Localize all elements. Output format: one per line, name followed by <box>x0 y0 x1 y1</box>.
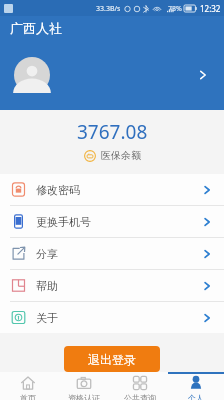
staticText: 广西人社 <box>10 20 62 36</box>
staticText: 个人 <box>188 393 204 400</box>
staticText: 资格认证 <box>68 393 100 400</box>
button[interactable]: 资格认证 <box>56 372 112 400</box>
staticText: 73% <box>168 4 182 14</box>
staticText: 公共查询 <box>124 393 156 400</box>
staticText: 更换手机号 <box>36 215 91 229</box>
button[interactable]: 分享 <box>0 238 224 269</box>
other: View profile <box>196 68 210 82</box>
staticText: 医保余额 <box>101 149 141 162</box>
button[interactable]: 修改密码 <box>0 174 224 205</box>
staticText: 帮助 <box>36 279 58 293</box>
button[interactable]: 帮助 <box>0 270 224 301</box>
staticText: 退出登录 <box>88 352 136 367</box>
staticText: 3767.08 <box>77 119 148 145</box>
staticText: 首页 <box>20 393 36 400</box>
staticText: 修改密码 <box>36 183 80 197</box>
staticText: 12:32 <box>200 3 221 14</box>
button[interactable]: 更换手机号 <box>0 206 224 237</box>
button[interactable]: 退出登录 <box>64 346 160 372</box>
staticText: 33.3B/s <box>96 4 121 14</box>
button[interactable]: View profile <box>0 40 224 110</box>
button[interactable]: 公共查询 <box>112 372 168 400</box>
staticText: 分享 <box>36 247 58 261</box>
button[interactable]: 关于 <box>0 302 224 333</box>
staticText: 关于 <box>36 311 58 325</box>
button[interactable]: 个人 <box>168 372 224 400</box>
button[interactable]: 首页 <box>0 372 56 400</box>
